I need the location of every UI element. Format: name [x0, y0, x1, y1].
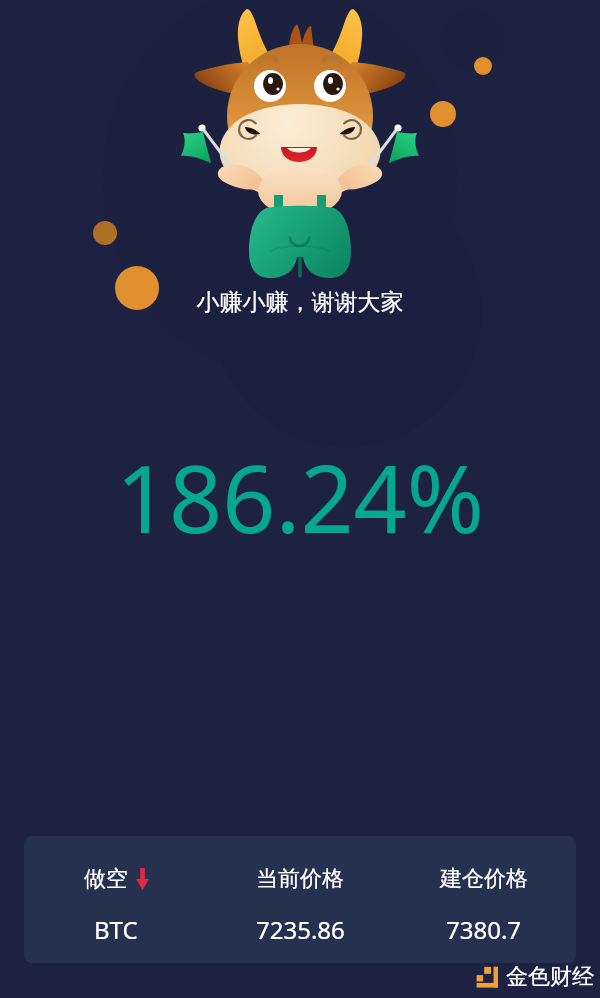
staticText: 小赚小赚，谢谢大家 — [0, 288, 600, 317]
staticText: BTC — [94, 913, 138, 946]
staticText: 做空 — [84, 865, 128, 893]
staticText: 当前价格 — [256, 865, 344, 893]
staticText: 建仓价格 — [440, 865, 528, 893]
button[interactable]: 做空 — [24, 836, 576, 963]
staticText: 7380.7 — [446, 913, 522, 946]
staticText: 7235.86 — [256, 913, 345, 946]
staticText: 金色财经 — [506, 963, 594, 991]
staticText: 186.24% — [0, 434, 600, 561]
